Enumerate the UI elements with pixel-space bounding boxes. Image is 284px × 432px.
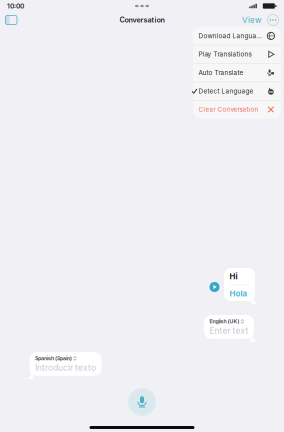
button[interactable]: Detect Language xyxy=(193,82,281,100)
staticText: Auto Translate xyxy=(198,69,243,76)
button[interactable]: Auto Translate xyxy=(193,64,281,82)
button[interactable]: Play Translations xyxy=(193,45,281,63)
staticText: Introducir texto xyxy=(35,362,96,373)
staticText: Spanish (Spain) xyxy=(35,355,72,362)
button[interactable]: View xyxy=(238,12,266,28)
button[interactable]: Spanish (Spain) xyxy=(29,352,101,376)
staticText: Clear Conversation xyxy=(198,106,258,113)
button[interactable]: More xyxy=(266,13,280,27)
staticText: Detect Language xyxy=(198,87,253,95)
button[interactable]: English (UK) xyxy=(204,315,254,339)
staticText: English (UK) xyxy=(209,318,239,325)
staticText: Hi xyxy=(229,272,237,281)
staticText: Conversation xyxy=(119,16,164,24)
staticText: 10:00 xyxy=(7,2,24,10)
button[interactable]: Download Languages xyxy=(193,27,281,45)
staticText: View xyxy=(242,15,262,25)
staticText: Play Translations xyxy=(198,50,251,58)
button[interactable]: Play translation xyxy=(209,282,219,292)
button[interactable]: Record xyxy=(128,388,156,416)
button[interactable]: Clear Conversation xyxy=(193,101,281,118)
staticText: Hola xyxy=(229,289,247,298)
staticText: Enter text xyxy=(209,325,248,336)
staticText: Download Languages xyxy=(198,32,264,40)
button[interactable]: Show Sidebar xyxy=(0,11,22,28)
